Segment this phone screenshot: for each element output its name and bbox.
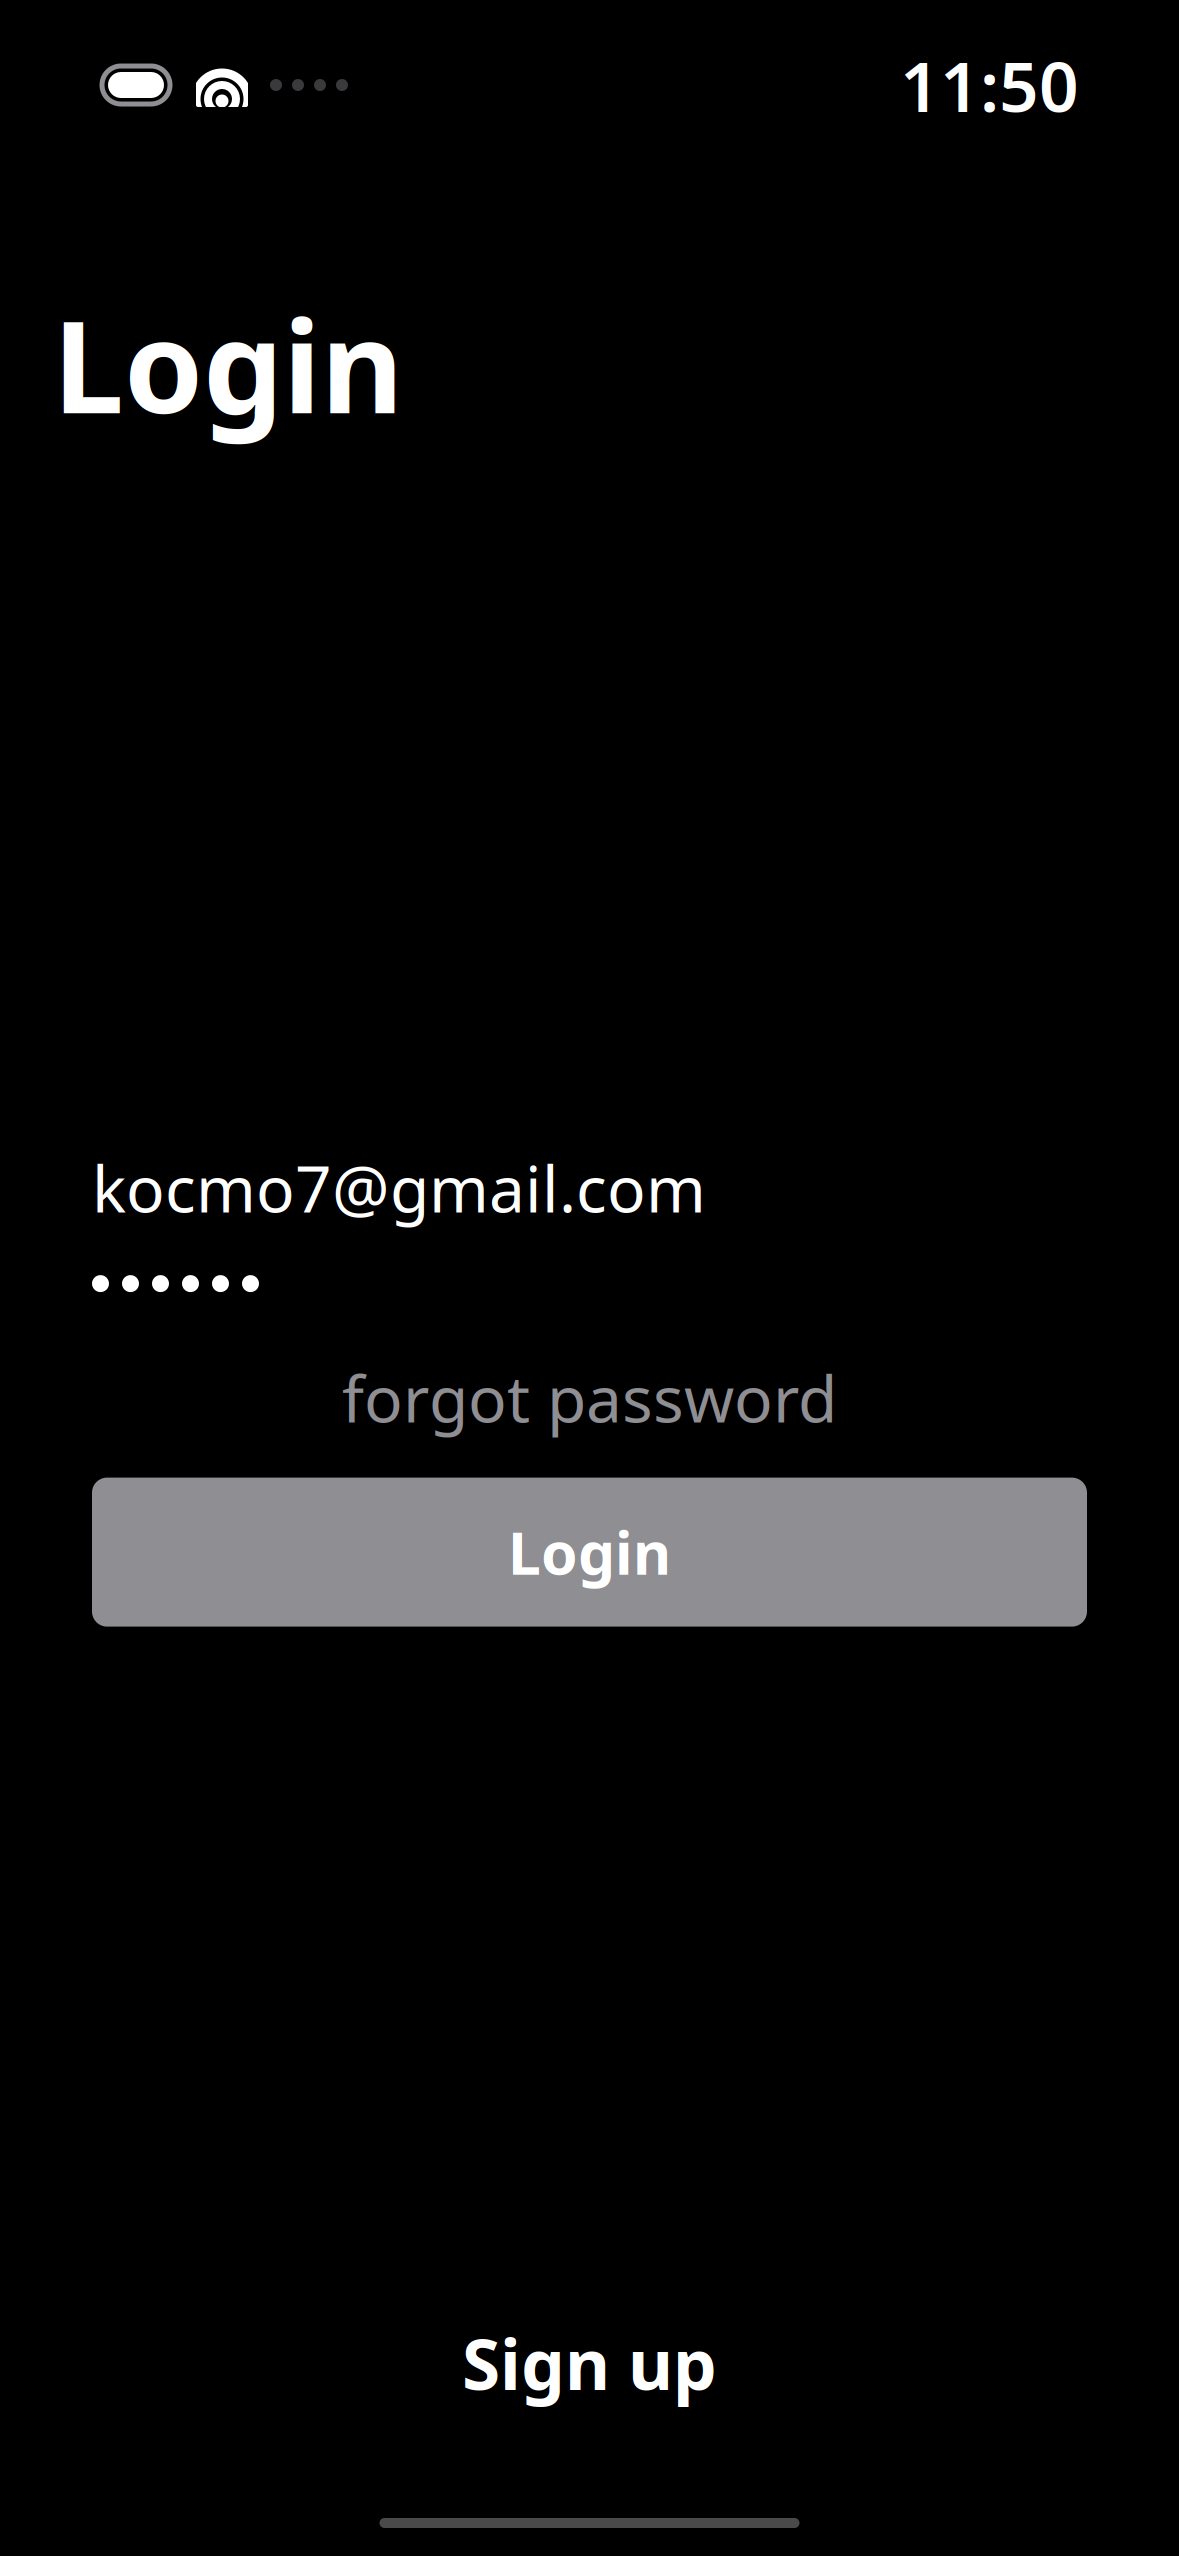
button[interactable]: kocmo7@gmail.com <box>0 1140 1179 1236</box>
staticText: 11:50 <box>900 39 1079 131</box>
staticText: Login <box>53 280 403 448</box>
staticText: Sign up <box>462 2317 717 2409</box>
button[interactable] <box>0 1236 1179 1332</box>
staticText: forgot password <box>342 1355 837 1440</box>
button[interactable]: Login <box>92 1478 1087 1627</box>
button[interactable]: forgot password <box>0 1354 1179 1442</box>
staticText: kocmo7@gmail.com <box>92 1145 706 1230</box>
staticText: Login <box>508 1513 671 1591</box>
button[interactable]: Sign up <box>0 2318 1179 2408</box>
